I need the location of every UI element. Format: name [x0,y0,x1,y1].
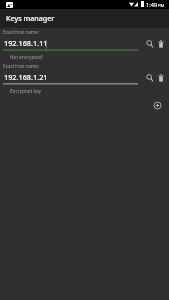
button[interactable]: Search [144,38,155,49]
button[interactable]: Delete [155,38,166,49]
staticText: Encrypted key [10,88,41,94]
staticText: 192.168.1.21 [4,72,48,82]
staticText: PM [158,3,165,9]
button[interactable]: Delete [155,72,166,83]
staticText: 1:49 [146,1,158,9]
staticText: 192.168.1.11 [4,38,48,48]
button[interactable]: Search [144,72,155,83]
staticText: Exact host name: [3,29,40,35]
staticText: Keys manager [6,13,55,23]
staticText: Not encrypted! [10,54,43,60]
staticText: Exact host name: [3,63,40,69]
button[interactable]: Add key [151,99,164,112]
